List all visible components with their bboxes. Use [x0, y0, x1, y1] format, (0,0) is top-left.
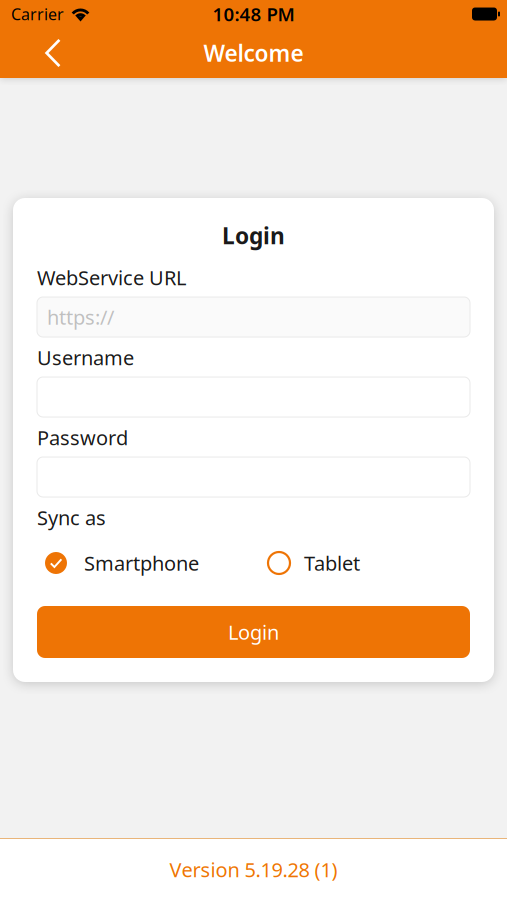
button[interactable]: Back [0, 28, 81, 77]
staticText: Login [228, 619, 279, 645]
button[interactable]: Smartphone [45, 550, 199, 576]
button[interactable]: Tablet [268, 550, 360, 576]
staticText: https:// [47, 304, 114, 330]
staticText: Sync as [37, 504, 106, 531]
staticText: Username [37, 344, 134, 371]
staticText: WebService URL [37, 264, 186, 291]
button[interactable]: Login [37, 606, 470, 658]
staticText: Login [222, 220, 285, 250]
staticText: Welcome [203, 38, 303, 68]
staticText: Carrier [11, 3, 64, 25]
staticText: 10:48 PM [212, 2, 294, 26]
button[interactable]: WebService URL [37, 297, 470, 337]
staticText: Version 5.19.28 (1) [169, 856, 337, 883]
staticText: Password [37, 424, 128, 451]
staticText: Smartphone [84, 550, 199, 576]
staticText: Tablet [304, 550, 360, 576]
